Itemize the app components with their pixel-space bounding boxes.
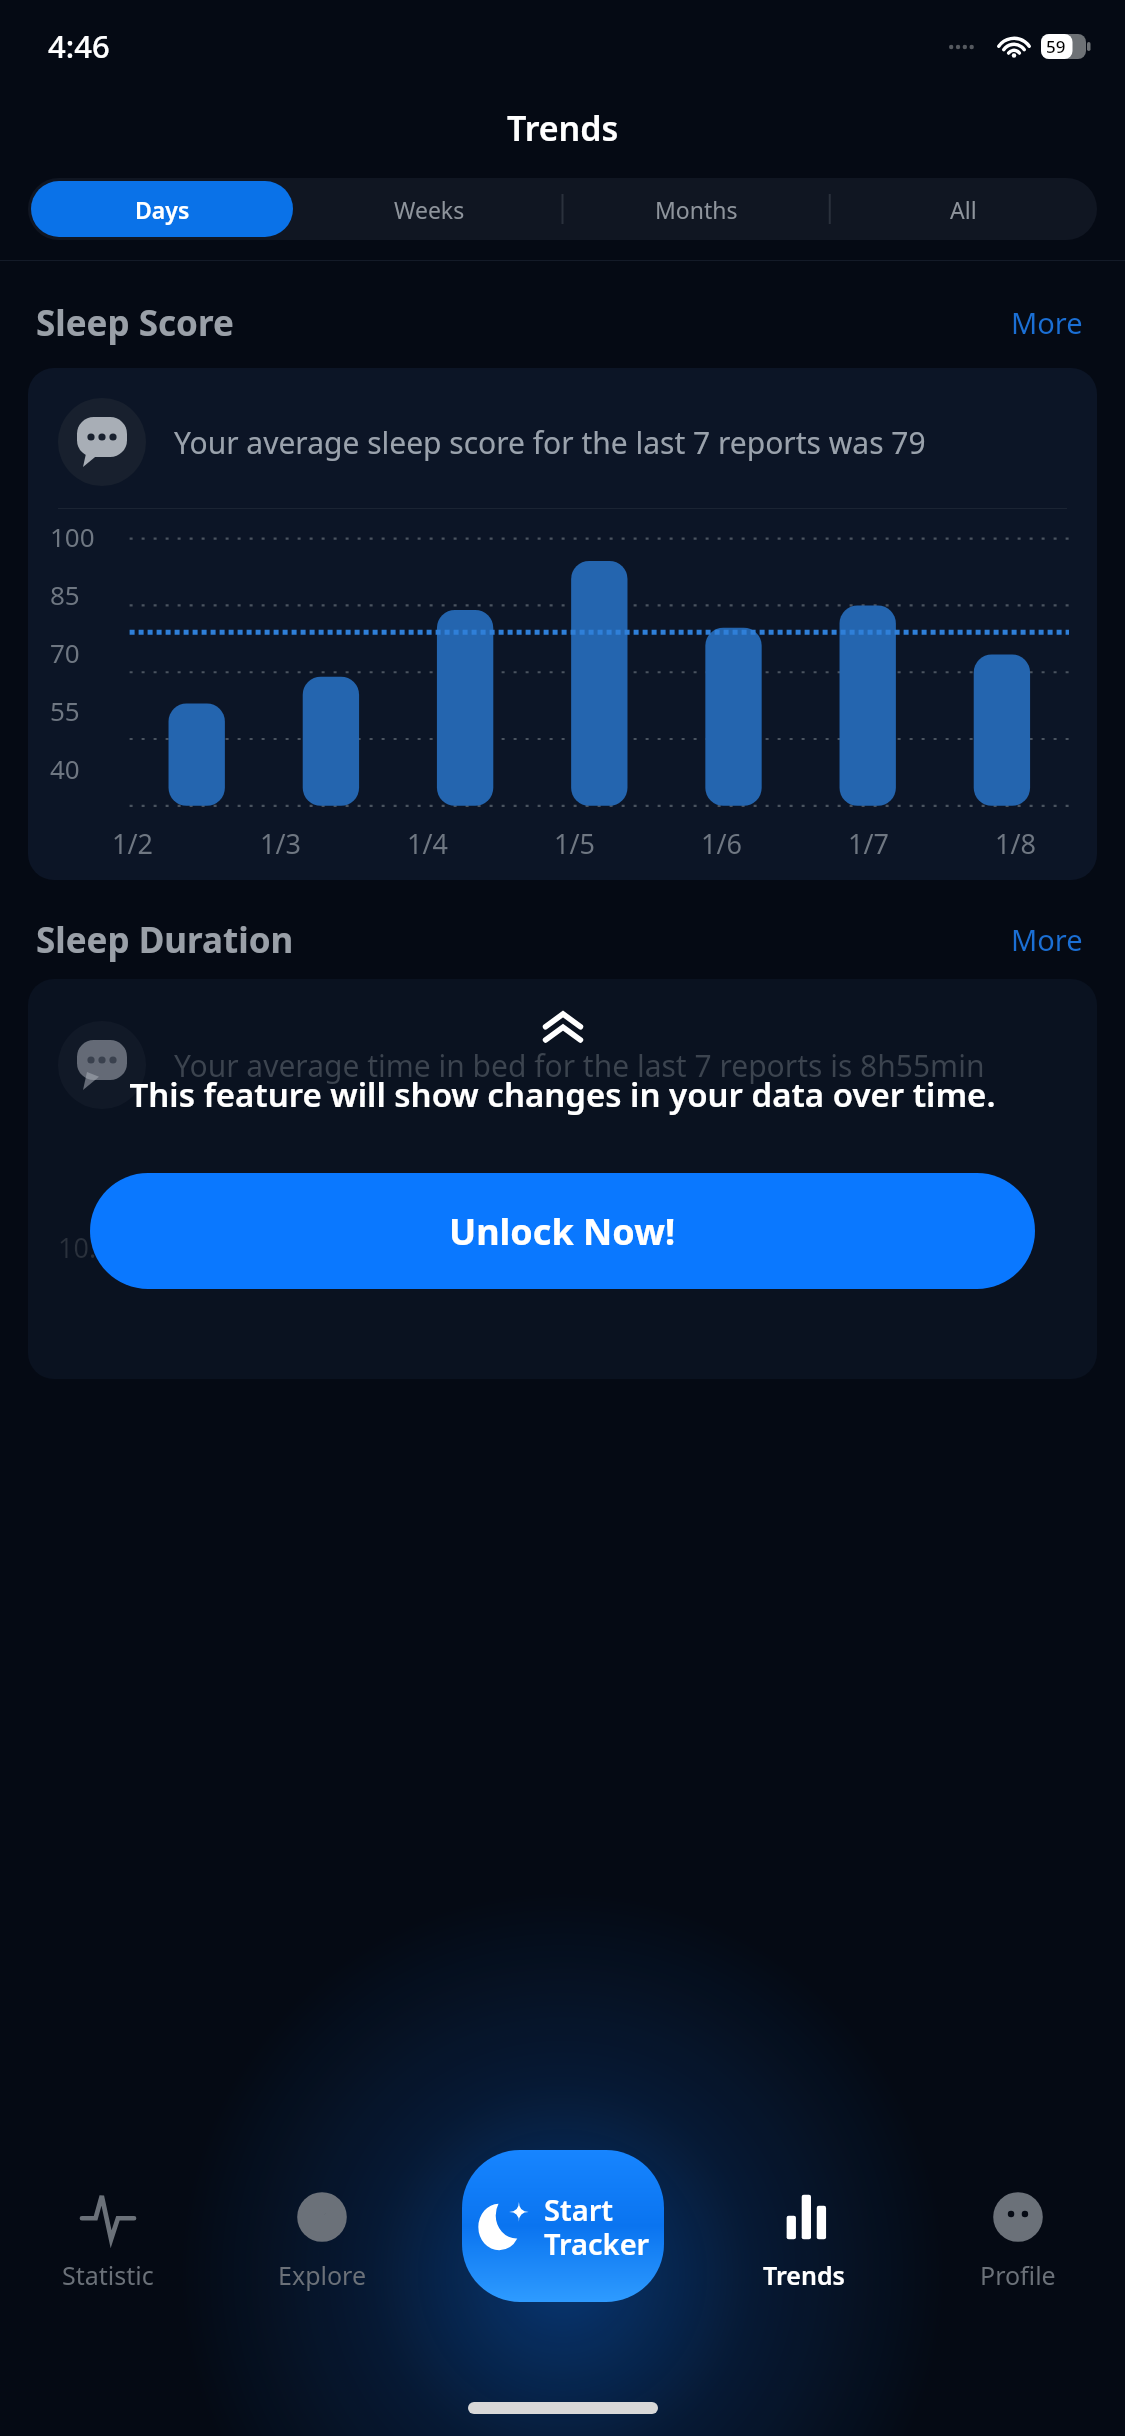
- button[interactable]: Statistic: [0, 2180, 215, 2298]
- staticText: 10.0 hrs: [58, 1229, 160, 1266]
- staticText: More: [1011, 920, 1083, 959]
- staticText: 1/5: [554, 825, 595, 862]
- button[interactable]: Explore: [215, 2180, 429, 2298]
- staticText: 85: [50, 577, 80, 612]
- button[interactable]: Days: [31, 181, 293, 237]
- staticText: Weeks: [394, 194, 465, 225]
- staticText: 70: [50, 635, 80, 670]
- staticText: Profile: [980, 2258, 1056, 2292]
- button[interactable]: More: [1005, 297, 1089, 348]
- staticText: 59: [1046, 35, 1066, 58]
- staticText: Your average time in bed for the last 7 …: [174, 1045, 985, 1086]
- staticText: Trends: [763, 2258, 845, 2292]
- staticText: 1/7: [848, 825, 889, 862]
- staticText: 40: [50, 751, 80, 786]
- button[interactable]: Months: [566, 181, 827, 237]
- staticText: Your average sleep score for the last 7 …: [174, 422, 926, 463]
- staticText: 1/8: [995, 825, 1036, 862]
- staticText: Trends: [507, 105, 619, 151]
- staticText: Sleep Score: [36, 299, 234, 347]
- staticText: 1/3: [260, 825, 301, 862]
- staticText: This feature will show changes in your d…: [129, 1072, 996, 1117]
- staticText: 55: [50, 693, 80, 728]
- staticText: More: [1011, 303, 1083, 342]
- staticText: Sleep Duration: [36, 916, 294, 964]
- staticText: 100: [50, 519, 95, 554]
- staticText: Start Tracker: [544, 2190, 650, 2263]
- button[interactable]: Start Tracker: [462, 2150, 664, 2302]
- staticText: Unlock Now!: [449, 1207, 676, 1256]
- staticText: Days: [135, 194, 190, 225]
- button[interactable]: More: [1005, 914, 1089, 965]
- button[interactable]: All: [833, 181, 1094, 237]
- staticText: 1/2: [112, 825, 153, 862]
- button[interactable]: Unlock Now!: [90, 1173, 1035, 1289]
- staticText: 1/6: [701, 825, 742, 862]
- staticText: 1/4: [407, 825, 448, 862]
- staticText: All: [950, 194, 977, 225]
- staticText: Statistic: [62, 2258, 154, 2292]
- button[interactable]: Profile: [911, 2180, 1125, 2298]
- staticText: Explore: [278, 2258, 367, 2292]
- button[interactable]: Your average sleep score for the last 7 …: [28, 368, 1097, 880]
- staticText: Months: [655, 194, 738, 225]
- button[interactable]: Weeks: [299, 181, 560, 237]
- button[interactable]: Trends: [697, 2180, 911, 2298]
- staticText: 4:46: [48, 25, 110, 67]
